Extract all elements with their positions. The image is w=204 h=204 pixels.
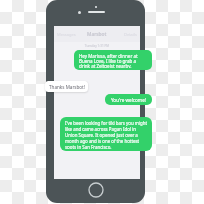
staticText: Details [124,32,137,37]
staticText: You're welcome! [111,97,146,103]
staticText: Tuesday 1:31 PM [54,44,140,48]
button[interactable]: Messages [54,30,79,39]
staticText: I've been looking for tiki bars you migh… [65,120,148,149]
button[interactable]: Details [121,30,140,39]
button[interactable]: Hey Marissa, after dinner at Buena Love,… [74,50,152,70]
button[interactable]: I've been looking for tiki bars you migh… [60,117,152,151]
button[interactable]: You're welcome! [105,94,152,105]
staticText: Marsbot [87,31,107,38]
staticText: Hey Marissa, after dinner at Buena Love,… [79,53,148,68]
button[interactable]: Home [88,182,104,198]
button[interactable]: Thanks Marsbot! [45,81,88,92]
staticText: Messages [57,32,76,37]
staticText: Thanks Marsbot! [49,84,85,90]
